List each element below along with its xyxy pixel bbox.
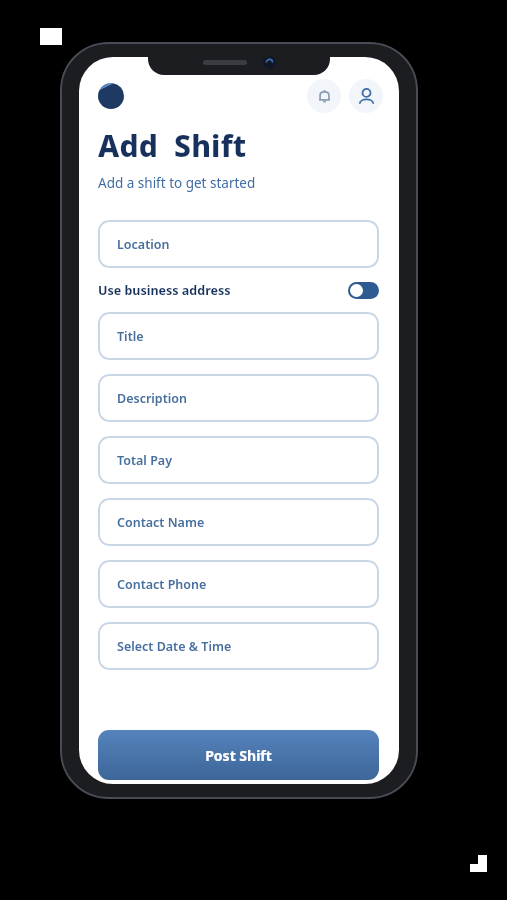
staticText: Contact Name [117,514,205,531]
button[interactable]: Contact Phone [98,560,379,608]
staticText: Contact Phone [117,576,207,593]
staticText: Add Shift [98,125,247,166]
button[interactable]: Use business address [98,277,379,303]
button[interactable]: Title [98,312,379,360]
staticText: Post Shift [205,746,272,765]
staticText: Use business address [98,282,231,299]
button[interactable]: Notifications [307,79,341,113]
staticText: Location [117,236,170,253]
button[interactable]: Select Date & Time [98,622,379,670]
staticText: Title [117,328,144,345]
button[interactable]: Profile [349,79,383,113]
button[interactable]: Location [98,220,379,268]
staticText: Total Pay [117,452,172,469]
button[interactable]: Total Pay [98,436,379,484]
button[interactable]: App logo [98,83,124,109]
staticText: Description [117,390,187,407]
staticText: Add a shift to get started [98,174,256,192]
button[interactable]: Description [98,374,379,422]
staticText: Select Date & Time [117,638,232,655]
button[interactable]: Contact Name [98,498,379,546]
button[interactable]: Use business address toggle [348,282,379,299]
button[interactable]: Post Shift [98,730,379,780]
